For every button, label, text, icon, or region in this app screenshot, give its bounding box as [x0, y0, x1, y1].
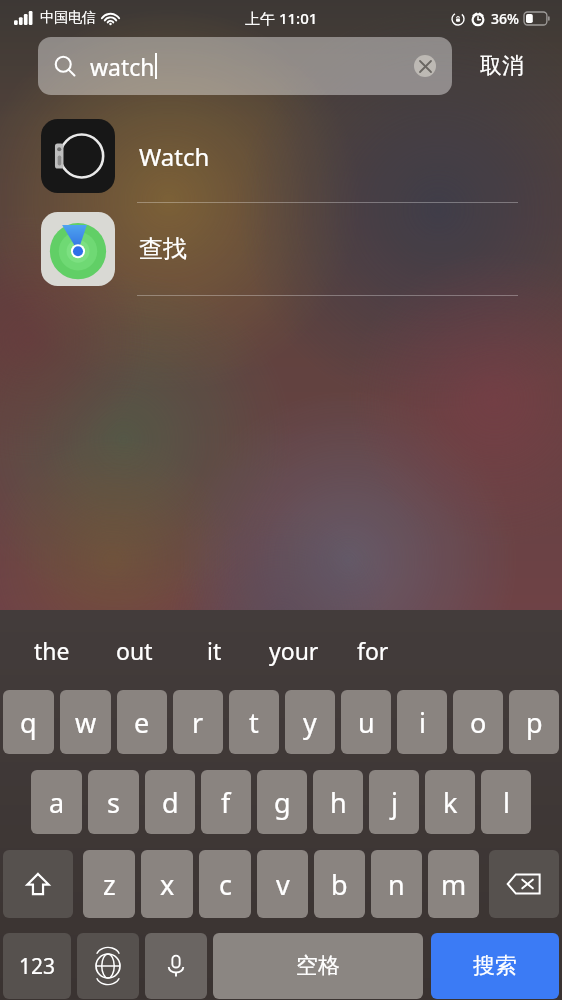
button[interactable]: out: [90, 610, 178, 690]
button[interactable]: h: [313, 770, 363, 834]
staticText: 取消: [480, 52, 524, 80]
staticText: j: [391, 784, 398, 821]
button[interactable]: g: [257, 770, 307, 834]
staticText: a: [49, 784, 65, 821]
staticText: 搜索: [473, 952, 517, 980]
button[interactable]: Watch: [0, 110, 562, 202]
button[interactable]: y: [285, 690, 335, 754]
button[interactable]: u: [341, 690, 391, 754]
button[interactable]: p: [509, 690, 559, 754]
button[interactable]: f: [201, 770, 251, 834]
button[interactable]: m: [428, 850, 479, 918]
button[interactable]: l: [481, 770, 531, 834]
button[interactable]: 空格: [213, 933, 423, 999]
staticText: d: [162, 784, 179, 821]
staticText: i: [419, 704, 426, 741]
staticText: p: [526, 704, 543, 741]
button[interactable]: Clear text: [414, 55, 436, 77]
button[interactable]: w: [60, 690, 111, 754]
staticText: your: [269, 635, 319, 666]
staticText: r: [192, 704, 204, 741]
button[interactable]: 搜索: [431, 933, 559, 999]
staticText: t: [249, 704, 259, 741]
staticText: n: [388, 866, 405, 903]
staticText: b: [331, 866, 348, 903]
button[interactable]: e: [117, 690, 167, 754]
staticText: f: [221, 784, 231, 821]
staticText: k: [443, 784, 458, 821]
staticText: c: [219, 866, 232, 903]
staticText: q: [20, 704, 37, 741]
button[interactable]: v: [257, 850, 308, 918]
button[interactable]: a: [31, 770, 82, 834]
staticText: Watch: [139, 140, 210, 173]
button[interactable]: i: [397, 690, 447, 754]
staticText: 上午 11:01: [245, 8, 318, 28]
button[interactable]: c: [199, 850, 251, 918]
staticText: v: [276, 866, 290, 903]
staticText: y: [303, 704, 317, 741]
button[interactable]: o: [453, 690, 503, 754]
staticText: out: [116, 635, 153, 666]
staticText: it: [207, 635, 222, 666]
staticText: 123: [19, 952, 56, 981]
button[interactable]: your: [250, 610, 338, 690]
staticText: the: [34, 635, 70, 666]
staticText: w: [75, 704, 97, 741]
button[interactable]: s: [88, 770, 139, 834]
button[interactable]: 123: [3, 933, 71, 999]
staticText: e: [134, 704, 150, 741]
staticText: 中国电信: [40, 9, 96, 27]
staticText: g: [274, 784, 291, 821]
button[interactable]: Backspace: [489, 850, 559, 918]
staticText: m: [441, 866, 467, 903]
button[interactable]: 取消: [452, 36, 552, 96]
staticText: 36%: [491, 9, 519, 28]
staticText: for: [357, 635, 389, 666]
staticText: 查找: [139, 234, 187, 264]
staticText: z: [103, 866, 116, 903]
button[interactable]: x: [141, 850, 193, 918]
staticText: o: [470, 704, 487, 741]
button[interactable]: Dictation: [145, 933, 207, 999]
button[interactable]: z: [83, 850, 135, 918]
button[interactable]: 查找: [0, 203, 562, 295]
staticText: l: [503, 784, 510, 821]
button[interactable]: Switch keyboard language: [77, 933, 139, 999]
button[interactable]: the: [14, 610, 90, 690]
staticText: s: [107, 784, 120, 821]
button[interactable]: k: [425, 770, 475, 834]
staticText: 空格: [296, 952, 340, 980]
button[interactable]: t: [229, 690, 279, 754]
button[interactable]: b: [314, 850, 365, 918]
button[interactable]: n: [371, 850, 422, 918]
staticText: x: [160, 866, 175, 903]
button[interactable]: for: [338, 610, 408, 690]
button[interactable]: Shift: [3, 850, 73, 918]
staticText: watch: [90, 51, 155, 82]
button[interactable]: d: [145, 770, 195, 834]
button[interactable]: it: [178, 610, 250, 690]
button[interactable]: r: [173, 690, 223, 754]
button[interactable]: j: [369, 770, 419, 834]
button[interactable]: watch: [38, 37, 452, 95]
button[interactable]: q: [3, 690, 54, 754]
staticText: u: [358, 704, 375, 741]
staticText: h: [330, 784, 347, 821]
